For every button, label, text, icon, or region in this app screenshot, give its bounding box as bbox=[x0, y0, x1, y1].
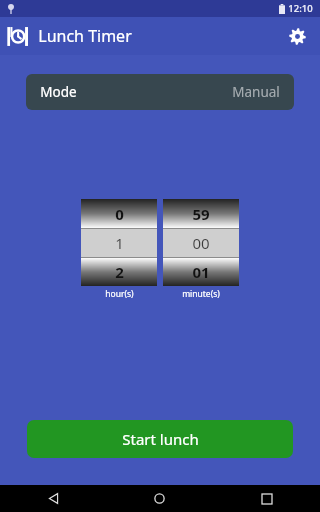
staticText: Mode bbox=[40, 83, 77, 101]
button[interactable]: Home bbox=[106, 485, 213, 512]
staticText: 59 bbox=[192, 204, 210, 224]
button[interactable]: 0 bbox=[81, 199, 157, 286]
staticText: hour(s) bbox=[105, 288, 134, 300]
staticText: Start lunch bbox=[122, 429, 199, 449]
staticText: 0 bbox=[115, 204, 124, 224]
staticText: Lunch Timer bbox=[38, 25, 132, 47]
staticText: 2 bbox=[115, 262, 124, 282]
staticText: 00 bbox=[192, 233, 210, 253]
button[interactable]: Recent apps bbox=[213, 485, 320, 512]
staticText: Manual bbox=[232, 83, 280, 101]
button[interactable]: Start lunch bbox=[27, 420, 293, 458]
button[interactable]: Settings bbox=[282, 21, 312, 51]
button[interactable]: Mode bbox=[26, 74, 294, 110]
button[interactable]: Back bbox=[0, 485, 106, 512]
staticText: minute(s) bbox=[182, 288, 220, 300]
button[interactable]: 59 bbox=[163, 199, 239, 286]
staticText: 01 bbox=[192, 262, 210, 282]
staticText: 12:10 bbox=[288, 2, 313, 15]
staticText: 1 bbox=[115, 233, 124, 253]
